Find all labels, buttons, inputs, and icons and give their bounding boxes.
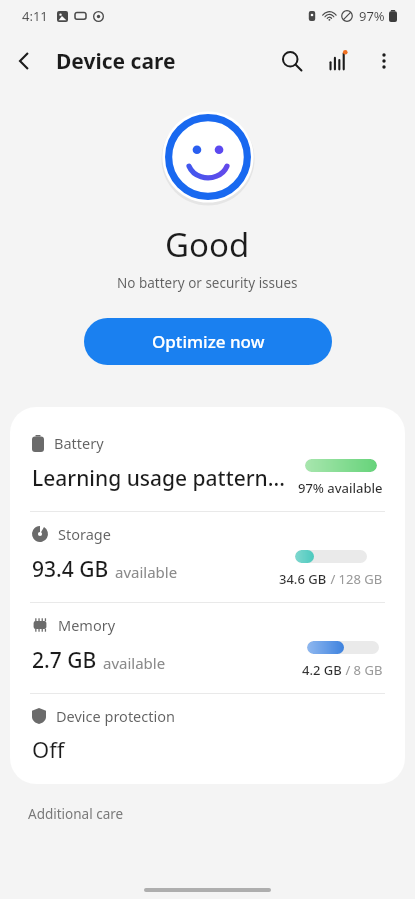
staticText: 93.4 GB xyxy=(32,555,109,584)
staticText: Storage xyxy=(58,524,111,544)
staticText: 34.6 GB xyxy=(279,570,327,588)
staticText: 4:11 xyxy=(22,7,48,25)
staticText: Off xyxy=(32,734,65,764)
staticText: Memory xyxy=(58,615,116,635)
staticText: / 128 GB xyxy=(327,570,383,588)
button[interactable]: Storage xyxy=(10,512,405,602)
staticText: 97% xyxy=(359,7,385,25)
staticText: Device protection xyxy=(56,706,175,726)
staticText: 4.2 GB xyxy=(302,661,342,679)
button[interactable]: Memory xyxy=(10,603,405,693)
staticText: 2.7 GB xyxy=(32,646,97,675)
staticText: Optimize now xyxy=(152,330,265,353)
staticText: No battery or security issues xyxy=(117,274,298,292)
button[interactable]: More options xyxy=(361,38,407,84)
button[interactable]: Device protection xyxy=(10,694,405,780)
button[interactable]: Search xyxy=(269,38,315,84)
staticText: available xyxy=(103,653,166,673)
button[interactable]: Usage statistics xyxy=(315,38,361,84)
staticText: Battery xyxy=(54,433,104,453)
staticText: Additional care xyxy=(28,805,124,823)
staticText: Device care xyxy=(56,47,176,76)
button[interactable]: Back xyxy=(0,37,48,85)
button[interactable]: Battery xyxy=(10,421,405,511)
staticText: available xyxy=(115,562,178,582)
staticText: 97% available xyxy=(298,479,383,497)
staticText: Learning usage pattern... xyxy=(32,464,285,493)
staticText: Good xyxy=(165,222,250,267)
button[interactable]: Device status Good xyxy=(160,109,256,205)
button[interactable]: Optimize now xyxy=(84,318,332,365)
staticText: / 8 GB xyxy=(342,661,383,679)
